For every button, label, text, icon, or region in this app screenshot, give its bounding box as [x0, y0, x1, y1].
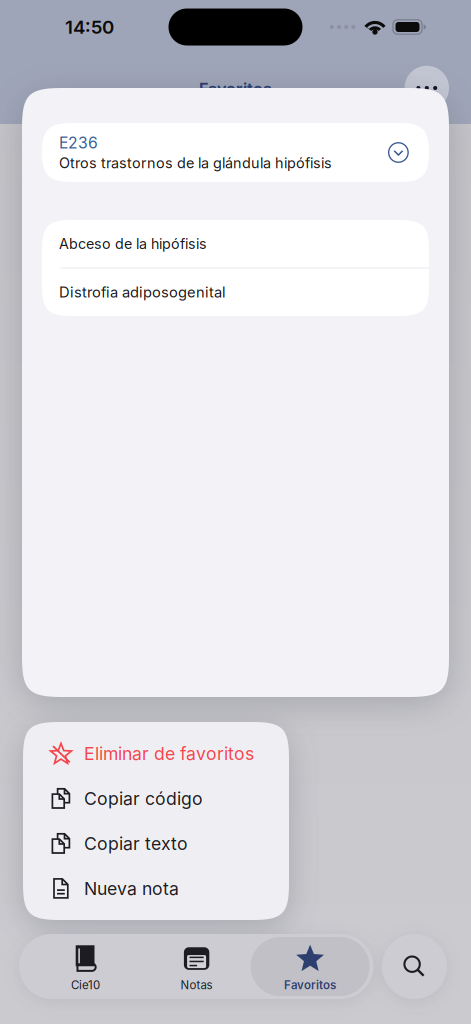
- staticText: Favoritos: [199, 79, 272, 99]
- button[interactable]: Cie10: [29, 937, 143, 996]
- button[interactable]: Distrofia adiposogenital: [42, 268, 429, 316]
- button[interactable]: Copiar texto: [23, 821, 289, 866]
- staticText: Favoritos: [284, 978, 336, 992]
- button[interactable]: Abceso de la hipófisis: [42, 220, 429, 268]
- staticText: Notas: [181, 978, 213, 992]
- button[interactable]: Buscar: [382, 934, 447, 999]
- button[interactable]: Nueva nota: [23, 866, 289, 911]
- staticText: Nueva nota: [84, 878, 179, 899]
- staticText: Copiar código: [84, 788, 203, 809]
- staticText: E236: [59, 133, 98, 152]
- button[interactable]: Copiar código: [23, 776, 289, 821]
- button[interactable]: Más opciones: [405, 66, 449, 110]
- button[interactable]: E236: [42, 123, 429, 182]
- staticText: 14:50: [65, 16, 114, 38]
- button[interactable]: Favoritos: [251, 937, 370, 996]
- button[interactable]: Notas: [143, 937, 251, 996]
- staticText: Distrofia adiposogenital: [59, 283, 226, 301]
- button[interactable]: Eliminar de favoritos: [23, 731, 289, 776]
- staticText: Cie10: [71, 978, 100, 992]
- staticText: Copiar texto: [84, 833, 188, 854]
- staticText: Eliminar de favoritos: [84, 743, 254, 764]
- staticText: Otros trastornos de la glándula hipófisi…: [59, 154, 332, 172]
- staticText: Abceso de la hipófisis: [59, 235, 207, 252]
